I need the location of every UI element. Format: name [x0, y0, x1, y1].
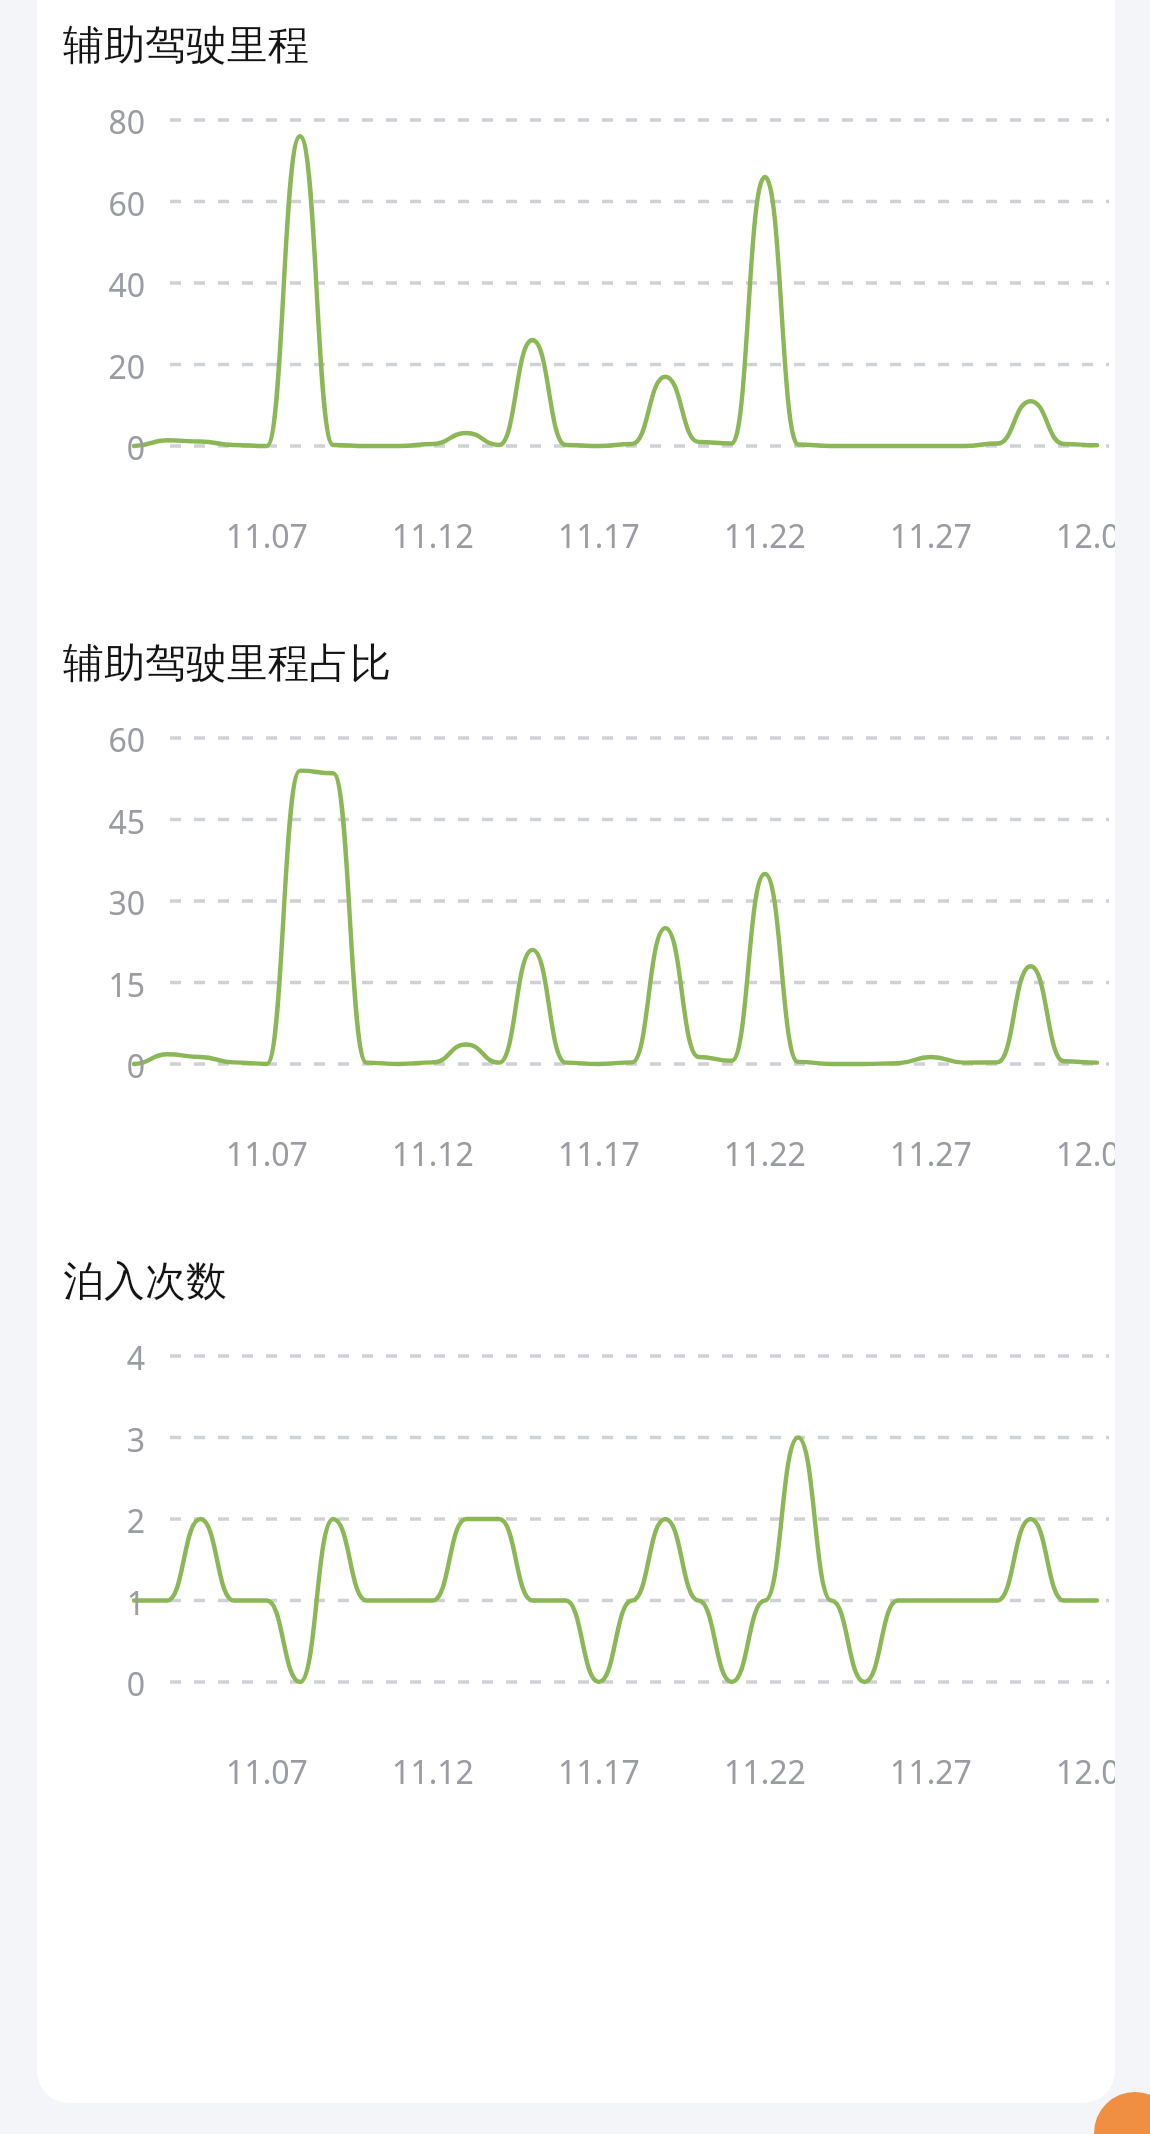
staticText: 11.07 [207, 1132, 327, 1176]
staticText: 30 [77, 881, 145, 925]
staticText: 11.17 [539, 1132, 659, 1176]
staticText: 0 [77, 426, 145, 470]
staticText: 15 [77, 963, 145, 1007]
staticText: 11.22 [705, 514, 825, 558]
staticText: 0 [77, 1044, 145, 1088]
button[interactable]: Add [1094, 2092, 1150, 2134]
staticText: 11.22 [705, 1750, 825, 1794]
staticText: 4 [77, 1336, 145, 1380]
staticText: 3 [77, 1418, 145, 1462]
staticText: 12.02 [1037, 1750, 1115, 1794]
staticText: 11.27 [871, 1750, 991, 1794]
staticText: 80 [77, 100, 145, 144]
staticText: 11.17 [539, 1750, 659, 1794]
staticText: 1 [77, 1581, 145, 1625]
staticText: 11.27 [871, 514, 991, 558]
staticText: 45 [77, 800, 145, 844]
staticText: 11.12 [373, 514, 493, 558]
staticText: 12.02 [1037, 1132, 1115, 1176]
staticText: 11.27 [871, 1132, 991, 1176]
staticText: 辅助驾驶里程 [63, 20, 309, 72]
staticText: 泊入次数 [63, 1256, 227, 1308]
staticText: 11.22 [705, 1132, 825, 1176]
staticText: 0 [77, 1662, 145, 1706]
staticText: 12.02 [1037, 514, 1115, 558]
staticText: 2 [77, 1499, 145, 1543]
staticText: 11.17 [539, 514, 659, 558]
staticText: 辅助驾驶里程占比 [63, 638, 391, 690]
staticText: 60 [77, 718, 145, 762]
staticText: 40 [77, 263, 145, 307]
staticText: 11.12 [373, 1132, 493, 1176]
staticText: 20 [77, 345, 145, 389]
staticText: 11.07 [207, 1750, 327, 1794]
staticText: 60 [77, 182, 145, 226]
staticText: 11.12 [373, 1750, 493, 1794]
staticText: 11.07 [207, 514, 327, 558]
